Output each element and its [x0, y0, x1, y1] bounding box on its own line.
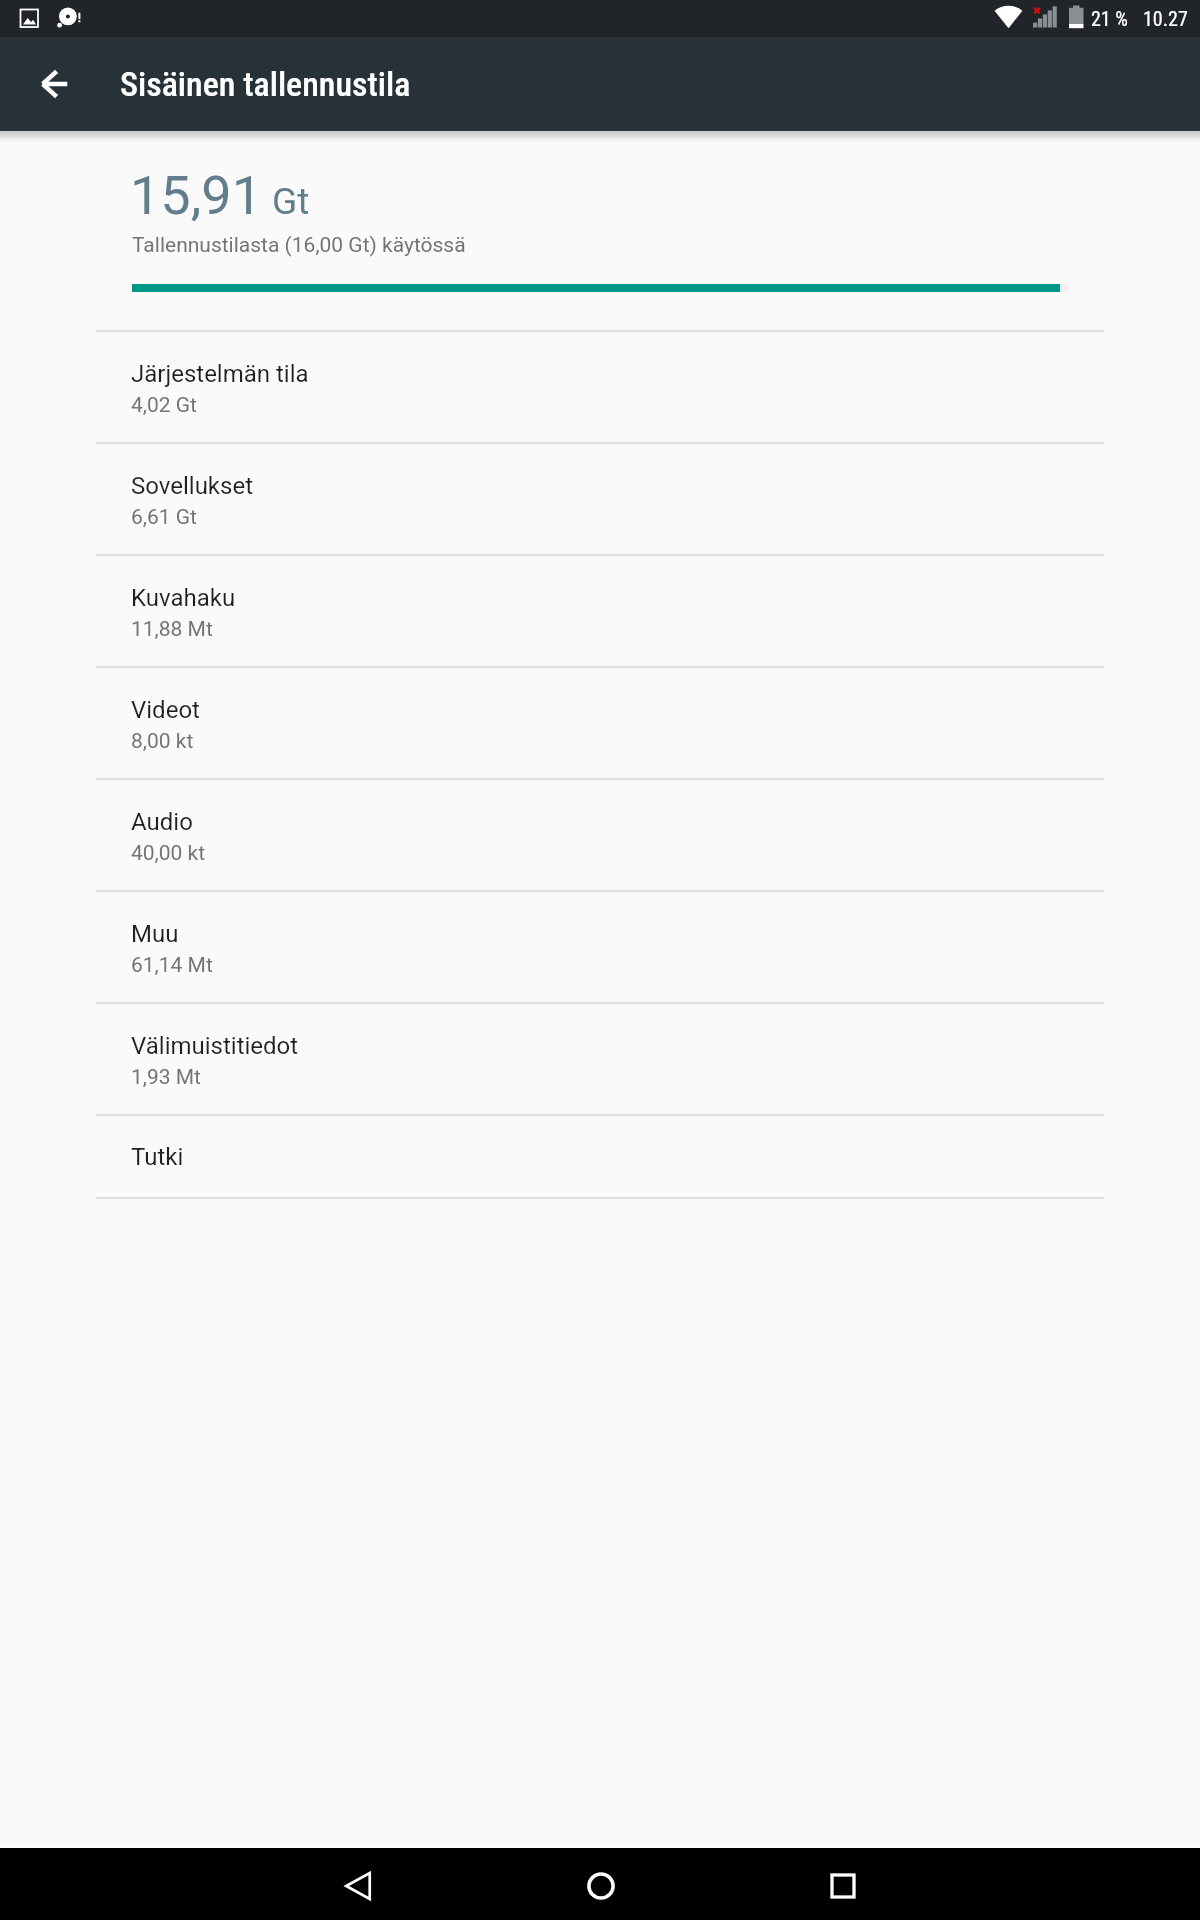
staticText: 8,00 kt	[131, 729, 194, 754]
button[interactable]: Välimuistitiedot	[0, 1004, 1200, 1114]
staticText: Järjestelmän tila	[131, 360, 309, 388]
staticText: Audio	[131, 808, 193, 836]
button[interactable]: Back	[321, 1849, 393, 1920]
staticText: 21 %	[1091, 7, 1128, 30]
button[interactable]: Sovellukset	[0, 444, 1200, 554]
staticText: Välimuistitiedot	[131, 1032, 299, 1060]
button[interactable]: Järjestelmän tila	[0, 332, 1200, 442]
staticText: 1,93 Mt	[131, 1065, 201, 1090]
staticText: 40,00 kt	[131, 841, 206, 866]
button[interactable]: Audio	[0, 780, 1200, 890]
staticText: Gt	[272, 180, 310, 223]
button[interactable]: Videot	[0, 668, 1200, 778]
button[interactable]: Home	[565, 1849, 637, 1920]
staticText: Kuvahaku	[131, 584, 236, 612]
staticText: Videot	[131, 696, 200, 724]
button[interactable]: Recent apps	[807, 1849, 879, 1920]
staticText: Tutki	[131, 1143, 184, 1171]
staticText: Sisäinen tallennustila	[120, 64, 411, 104]
staticText: 15,91	[130, 164, 263, 227]
staticText: 11,88 Mt	[131, 617, 213, 642]
button[interactable]: Muu	[0, 892, 1200, 1002]
staticText: 61,14 Mt	[131, 953, 213, 978]
staticText: 6,61 Gt	[131, 505, 197, 530]
button[interactable]: Kuvahaku	[0, 556, 1200, 666]
button[interactable]: Tutki	[0, 1116, 1200, 1197]
staticText: Sovellukset	[131, 472, 253, 500]
staticText: 10.27	[1143, 7, 1188, 30]
staticText: Muu	[131, 920, 179, 948]
staticText: Tallennustilasta (16,00 Gt) käytössä	[132, 233, 466, 258]
button[interactable]: Back	[19, 48, 91, 120]
staticText: 4,02 Gt	[131, 393, 197, 418]
